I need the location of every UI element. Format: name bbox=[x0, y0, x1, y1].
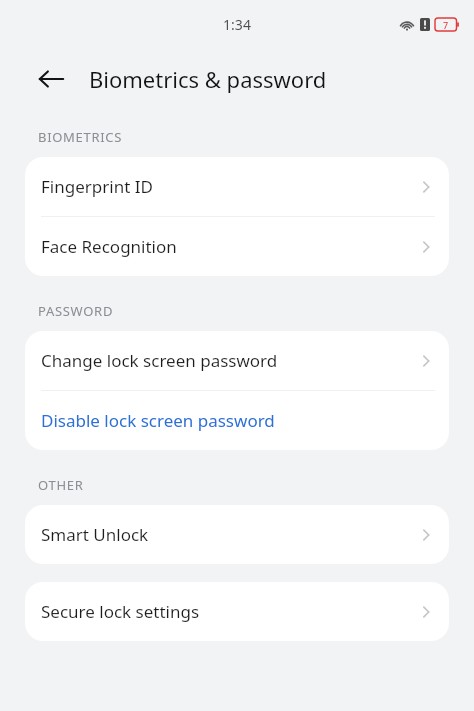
staticText: Biometrics & password bbox=[89, 64, 327, 94]
staticText: Secure lock settings bbox=[41, 600, 417, 623]
staticText: Disable lock screen password bbox=[41, 409, 435, 432]
staticText: Change lock screen password bbox=[41, 349, 417, 372]
staticText: OTHER bbox=[38, 476, 84, 494]
staticText: 1:34 bbox=[223, 15, 251, 34]
staticText: Smart Unlock bbox=[41, 523, 417, 546]
button[interactable]: Face Recognition bbox=[25, 217, 449, 276]
staticText: PASSWORD bbox=[38, 302, 114, 320]
staticText: Face Recognition bbox=[41, 235, 417, 258]
staticText: 7 bbox=[443, 19, 449, 31]
button[interactable]: Smart Unlock bbox=[25, 505, 449, 564]
staticText: BIOMETRICS bbox=[38, 128, 123, 146]
staticText: Fingerprint ID bbox=[41, 175, 417, 198]
button[interactable]: Change lock screen password bbox=[25, 331, 449, 390]
button[interactable]: Secure lock settings bbox=[25, 582, 449, 641]
button[interactable]: Back bbox=[32, 60, 70, 98]
button[interactable]: Fingerprint ID bbox=[25, 157, 449, 216]
button[interactable]: Disable lock screen password bbox=[25, 391, 449, 450]
